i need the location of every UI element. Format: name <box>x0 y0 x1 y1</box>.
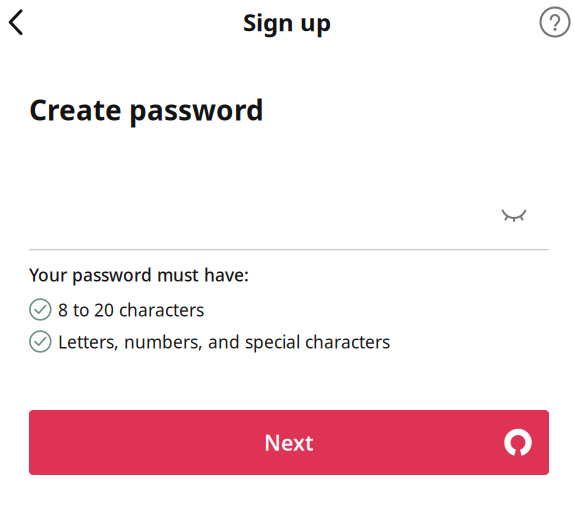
button[interactable]: Next <box>29 410 549 475</box>
button[interactable]: Back <box>0 0 35 44</box>
staticText: Sign up <box>243 6 331 38</box>
staticText: Create password <box>29 91 264 128</box>
button[interactable]: Help <box>529 0 573 44</box>
staticText: 8 to 20 characters <box>58 298 204 321</box>
staticText: Next <box>264 428 314 457</box>
staticText: Your password must have: <box>29 263 249 286</box>
staticText: Letters, numbers, and special characters <box>58 330 390 353</box>
button[interactable]: Show password <box>488 202 549 238</box>
